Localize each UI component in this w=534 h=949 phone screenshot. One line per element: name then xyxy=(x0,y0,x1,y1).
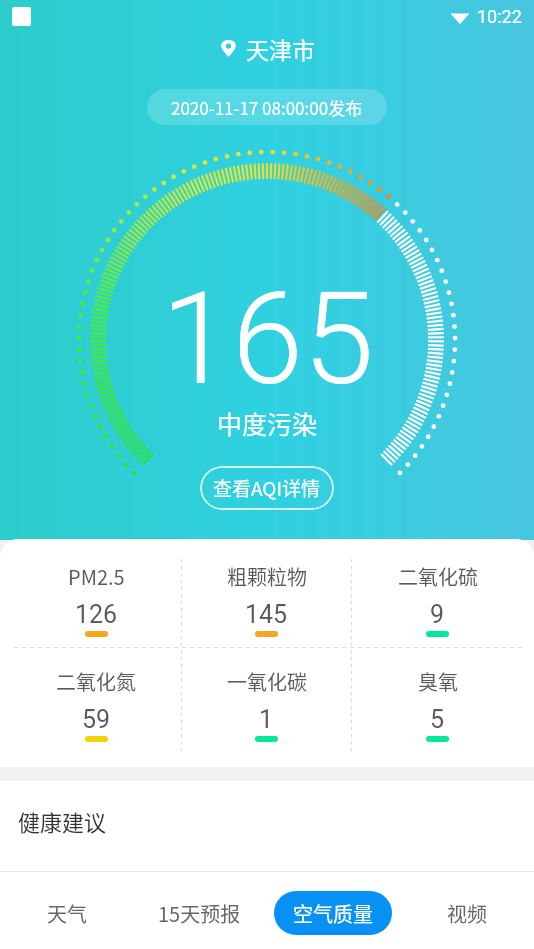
staticText: 一氧化碳 xyxy=(227,667,307,696)
staticText: 165 xyxy=(161,264,374,414)
staticText: 中度污染 xyxy=(217,405,318,441)
staticText: 天气 xyxy=(47,899,87,928)
staticText: PM2.5 xyxy=(68,562,125,591)
staticText: 145 xyxy=(245,600,288,629)
staticText: 2020-11-17 08:00:00发布 xyxy=(171,95,363,120)
staticText: 9 xyxy=(430,600,445,629)
staticText: 二氧化氮 xyxy=(56,667,136,696)
staticText: 126 xyxy=(75,600,118,629)
staticText: 1 xyxy=(259,705,274,734)
other: Wi-Fi xyxy=(450,7,470,27)
other: App icon xyxy=(12,7,31,26)
staticText: 臭氧 xyxy=(418,667,458,696)
button[interactable]: 视频 xyxy=(431,891,503,935)
button[interactable]: 空气质量 xyxy=(274,891,392,935)
button[interactable]: 15天预报 xyxy=(142,891,257,935)
button[interactable]: 一氧化碳 xyxy=(181,653,352,767)
button[interactable]: 2020-11-17 08:00:00发布 xyxy=(147,89,387,125)
staticText: 粗颗粒物 xyxy=(227,562,307,591)
staticText: 15天预报 xyxy=(158,899,241,928)
staticText: 健康建议 xyxy=(18,805,107,837)
staticText: 天津市 xyxy=(246,32,315,65)
button[interactable]: 臭氧 xyxy=(352,653,523,767)
button[interactable]: 粗颗粒物 xyxy=(181,539,352,653)
button[interactable]: 天津市 xyxy=(220,32,315,65)
staticText: 查看AQI详情 xyxy=(213,474,321,502)
button[interactable]: 查看AQI详情 xyxy=(200,466,334,510)
staticText: 空气质量 xyxy=(293,899,373,928)
button[interactable]: PM2.5 xyxy=(11,539,181,653)
staticText: 视频 xyxy=(447,899,487,928)
staticText: 10:22 xyxy=(477,6,522,27)
button[interactable]: 二氧化硫 xyxy=(352,539,523,653)
staticText: 5 xyxy=(430,705,445,734)
staticText: 59 xyxy=(82,705,111,734)
button[interactable]: 天气 xyxy=(31,891,103,935)
button[interactable]: 二氧化氮 xyxy=(11,653,181,767)
staticText: 二氧化硫 xyxy=(398,562,478,591)
